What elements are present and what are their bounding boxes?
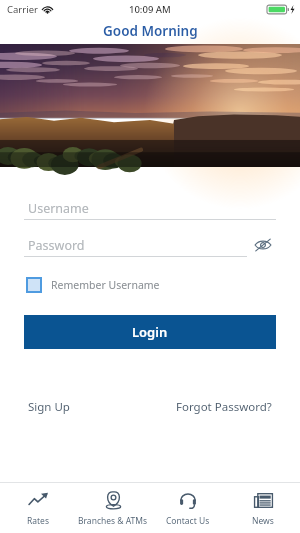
staticText: Good Morning [103, 22, 198, 40]
staticText: Sign Up [28, 399, 70, 415]
button[interactable]: Password [24, 234, 250, 256]
button[interactable]: Forgot Password? [172, 395, 276, 419]
staticText: Carrier [7, 3, 38, 16]
staticText: Rates [27, 515, 49, 527]
staticText: Remember Username [51, 278, 160, 292]
staticText: Forgot Password? [176, 399, 272, 415]
button[interactable]: Show password [250, 234, 276, 256]
staticText: 10:09 AM [129, 3, 171, 16]
button[interactable]: Contact Us [150, 483, 225, 533]
staticText: Branches & ATMs [78, 515, 148, 527]
button[interactable]: Branches & ATMs [75, 483, 150, 533]
staticText: Contact Us [166, 515, 210, 527]
staticText: Password [28, 237, 85, 254]
staticText: Username [28, 200, 89, 217]
button[interactable]: Login [24, 315, 276, 349]
button[interactable]: Remember Username [24, 275, 162, 295]
staticText: Login [132, 323, 168, 341]
button[interactable]: Username [24, 197, 276, 220]
button[interactable]: News [225, 483, 300, 533]
button[interactable]: Rates [0, 483, 75, 533]
staticText: News [252, 515, 274, 527]
button[interactable]: Sign Up [24, 395, 74, 419]
